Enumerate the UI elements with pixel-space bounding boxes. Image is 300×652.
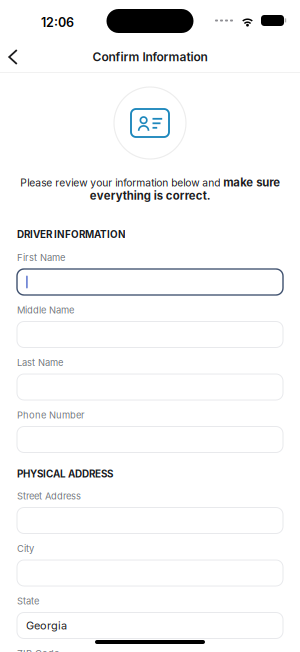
- staticText: Georgia: [26, 619, 67, 632]
- staticText: Please review your information below and…: [20, 176, 280, 202]
- button[interactable]: Phone Number: [17, 410, 283, 452]
- staticText: PHYSICAL ADDRESS: [17, 468, 113, 480]
- button[interactable]: First Name: [17, 253, 283, 295]
- staticText: First Name: [17, 252, 65, 263]
- staticText: Last Name: [17, 357, 63, 368]
- staticText: Confirm Information: [92, 50, 207, 64]
- button[interactable]: City: [17, 544, 283, 586]
- staticText: DRIVER INFORMATION: [17, 228, 126, 240]
- staticText: 12:06: [41, 15, 74, 30]
- button[interactable]: ZIP Code: [17, 649, 283, 652]
- staticText: Street Address: [17, 490, 81, 502]
- staticText: Phone Number: [17, 409, 85, 421]
- staticText: ZIP Code: [17, 648, 59, 652]
- button[interactable]: Street Address: [17, 491, 283, 533]
- button[interactable]: Last Name: [17, 358, 283, 400]
- staticText: State: [17, 595, 39, 607]
- staticText: City: [17, 543, 34, 554]
- button[interactable]: Back: [0, 42, 28, 72]
- button[interactable]: State: [17, 596, 283, 638]
- staticText: Middle Name: [17, 304, 74, 316]
- button[interactable]: Middle Name: [17, 305, 283, 347]
